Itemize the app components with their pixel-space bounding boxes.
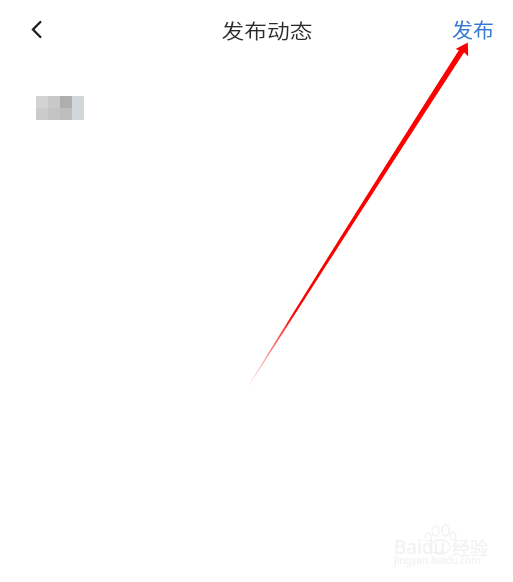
staticText: 发布动态 xyxy=(221,16,313,45)
staticText: Baidu xyxy=(394,534,446,560)
staticText: 发布 xyxy=(452,15,494,44)
button[interactable]: Attached image xyxy=(36,96,84,120)
staticText: jingyan.baidu.com xyxy=(394,553,481,567)
button[interactable]: 发布 xyxy=(447,9,499,50)
button[interactable]: Back xyxy=(15,8,58,51)
staticText: 经验 xyxy=(452,534,488,560)
